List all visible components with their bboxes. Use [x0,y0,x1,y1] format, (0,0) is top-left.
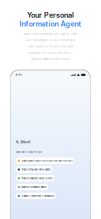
staticText: Meet Your Personal Info Agent. Own your … [24,32,77,61]
button[interactable]: Support Investment Checkpoints [15,193,56,199]
staticText: Track Company Intelligence [21,168,50,171]
staticText: Hi, Albert! [15,141,30,144]
button[interactable]: Track News And Price Alerts For My Portf… [15,158,74,164]
staticText: Support Investment Checkpoints [21,194,54,197]
button[interactable]: Track Breaking Social Alerts [15,175,54,181]
button[interactable]: Monitor Research Topics [15,184,48,190]
staticText: Your Personal [27,11,74,19]
staticText: Track Breaking Social Alerts [21,177,52,180]
staticText: Information Agent [19,20,81,28]
staticText: 9:41 [15,73,21,76]
staticText: Monitor Research Topics [21,186,46,188]
staticText: What can I track for you? [15,151,41,154]
staticText: Track News And Price Alerts For My Portf… [21,159,72,162]
button[interactable]: Track Company Intelligence [15,166,52,173]
